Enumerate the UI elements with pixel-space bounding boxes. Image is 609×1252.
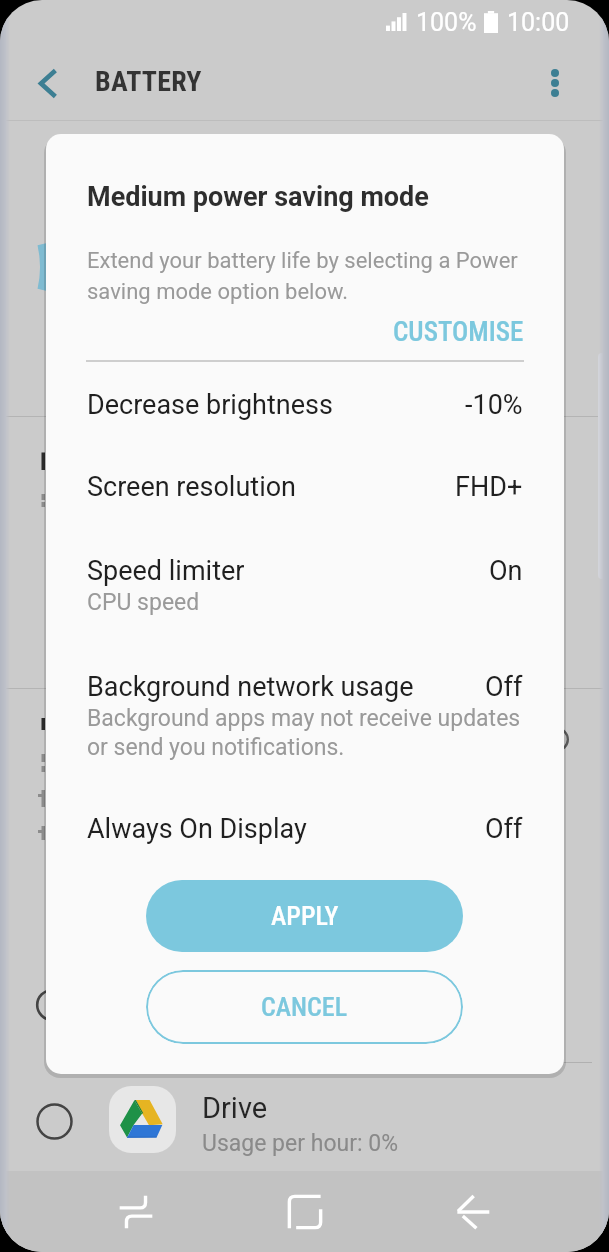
staticText: Background apps may not receive updates … (87, 705, 521, 761)
staticText: Background network usage (87, 671, 414, 703)
button[interactable]: Decrease brightness (46, 389, 564, 421)
staticText: Off (485, 813, 523, 845)
button[interactable]: More options (530, 58, 580, 108)
button[interactable]: CUSTOMISE (46, 309, 564, 355)
staticText: Always On Display (87, 813, 307, 845)
staticText: Off (485, 671, 523, 703)
staticText: APPLY (271, 901, 339, 931)
button[interactable]: Back (440, 1179, 506, 1245)
staticText: CANCEL (261, 992, 348, 1022)
staticText: Usage per hour: 0% (202, 1130, 399, 1157)
button[interactable]: Screen resolution (46, 471, 564, 503)
button[interactable]: Speed limiter (46, 555, 564, 616)
staticText: Extend your battery life by selecting a … (87, 248, 518, 304)
button[interactable]: Recent apps (103, 1179, 169, 1245)
button[interactable]: Home (272, 1179, 338, 1245)
staticText: CUSTOMISE (393, 316, 524, 348)
staticText: Speed limiter (87, 555, 245, 587)
staticText: 100% (416, 8, 477, 37)
staticText: Medium power saving mode (87, 181, 429, 213)
staticText: On (489, 555, 523, 587)
staticText: Decrease brightness (87, 389, 333, 421)
button[interactable]: Navigate up (20, 55, 76, 111)
staticText: Drive (202, 1091, 268, 1125)
staticText: BATTERY (95, 65, 202, 98)
staticText: Screen resolution (87, 471, 297, 503)
staticText: FHD+ (455, 471, 523, 503)
button[interactable]: APPLY (146, 880, 463, 952)
staticText: CPU speed (87, 589, 200, 616)
button[interactable]: Background network usage (46, 671, 564, 761)
staticText: 10:00 (507, 8, 570, 37)
button[interactable]: CANCEL (146, 970, 463, 1044)
button[interactable]: Always On Display (46, 813, 564, 845)
button[interactable]: Drive (0, 1075, 609, 1174)
staticText: -10% (465, 389, 523, 421)
